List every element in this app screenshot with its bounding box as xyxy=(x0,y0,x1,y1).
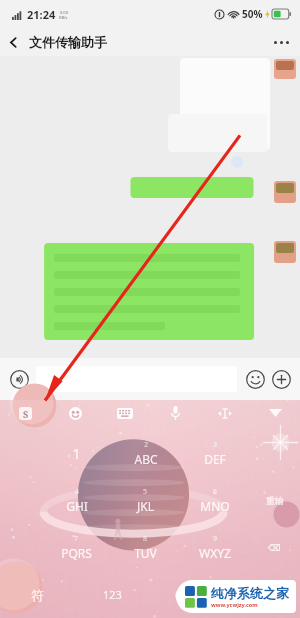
staticText: 7 xyxy=(74,534,79,544)
staticText: 2 xyxy=(144,440,149,450)
staticText: 21:24 xyxy=(27,7,56,22)
button[interactable]: Enter xyxy=(225,571,300,618)
button[interactable]: Emoji xyxy=(243,367,267,391)
staticText: 6 xyxy=(213,487,218,497)
button[interactable]: 6 xyxy=(180,477,249,524)
staticText: 123 xyxy=(103,587,122,602)
button[interactable]: 123 xyxy=(75,571,150,618)
button[interactable]: 7 xyxy=(42,524,111,571)
staticText: 符 xyxy=(31,587,44,603)
button[interactable]: 2 xyxy=(111,430,180,477)
staticText: 5 xyxy=(143,487,148,497)
staticText: 4 xyxy=(75,487,80,497)
staticText: 空格 xyxy=(186,591,200,600)
button[interactable]: Symbol key xyxy=(0,524,42,571)
button[interactable]: Function key xyxy=(249,430,300,477)
staticText: WXYZ xyxy=(199,545,231,561)
button[interactable]: 3 xyxy=(180,430,249,477)
button[interactable]: ⌫ xyxy=(249,524,300,571)
staticText: 1 xyxy=(72,444,81,463)
staticText: 文件传输助手 xyxy=(29,34,107,50)
button[interactable]: 0 xyxy=(150,571,225,618)
staticText: GHI xyxy=(66,498,88,514)
button[interactable]: 8 xyxy=(111,524,180,571)
button[interactable]: 重输 xyxy=(249,477,300,524)
staticText: S xyxy=(23,408,29,420)
button[interactable]: Voice input xyxy=(150,400,200,426)
button[interactable]: 符 xyxy=(0,571,75,618)
button[interactable]: More functions xyxy=(269,367,293,391)
staticText: KB/s xyxy=(59,15,68,20)
staticText: 3 xyxy=(213,440,218,450)
staticText: PQRS xyxy=(61,545,92,561)
staticText: 重输 xyxy=(266,495,284,506)
button[interactable]: Voice input xyxy=(7,367,31,391)
staticText: 8 xyxy=(143,534,148,544)
staticText: TUV xyxy=(134,545,157,561)
staticText: www.ycwjzy.com xyxy=(211,601,258,608)
button[interactable]: Hide keyboard xyxy=(250,400,300,426)
staticText: 50% xyxy=(242,7,263,21)
button[interactable] xyxy=(36,366,237,392)
button[interactable]: Edit text cursor xyxy=(200,400,250,426)
button[interactable]: Back xyxy=(0,29,26,55)
button[interactable]: 5 xyxy=(111,477,180,524)
staticText: DEF xyxy=(204,451,226,467)
staticText: 0 xyxy=(175,586,183,604)
button[interactable]: 1 xyxy=(42,430,111,477)
staticText: ⌫ xyxy=(268,543,281,553)
button[interactable]: Symbol key xyxy=(0,477,42,524)
staticText: ABC xyxy=(134,451,158,467)
staticText: 纯净系统之家 xyxy=(211,585,289,601)
button[interactable]: Sogou input settings xyxy=(0,400,50,426)
button[interactable]: More options xyxy=(268,29,294,55)
staticText: 0.00 xyxy=(60,10,68,15)
button[interactable]: Switch keyboard layout xyxy=(100,400,150,426)
button[interactable]: Emoji keyboard xyxy=(50,400,100,426)
staticText: 9 xyxy=(213,534,218,544)
staticText: MNO xyxy=(200,498,230,514)
staticText: JKL xyxy=(137,498,154,514)
button[interactable]: 4 xyxy=(42,477,111,524)
button[interactable]: 9 xyxy=(180,524,249,571)
